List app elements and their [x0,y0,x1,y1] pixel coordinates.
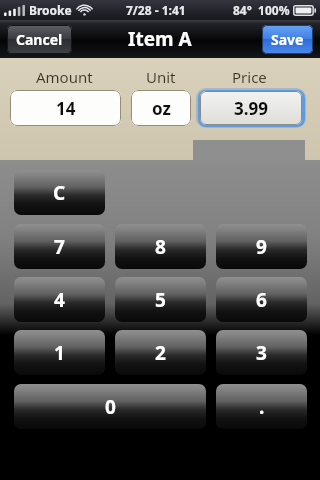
button[interactable]: oz [131,90,191,126]
staticText: Cancel [16,30,63,49]
staticText: Price [232,67,267,87]
staticText: C [53,180,66,206]
button[interactable]: 3 [216,330,307,375]
button[interactable]: 5 [115,277,206,322]
button[interactable]: 4 [14,277,105,322]
button[interactable]: 3.99 [200,91,302,125]
button[interactable]: 6 [216,277,307,322]
button[interactable]: 9 [216,224,307,269]
staticText: 7/28 - 1:41 [126,2,186,18]
staticText: 14 [56,97,76,120]
staticText: 4 [54,287,65,313]
staticText: 5 [155,287,166,313]
button[interactable]: C [14,170,105,215]
staticText: 84° 100% [233,2,290,18]
staticText: Save [271,30,304,49]
button[interactable]: 7 [14,224,105,269]
staticText: Brooke [29,2,72,18]
button[interactable]: Cancel [7,25,72,54]
button[interactable]: . [216,384,307,429]
staticText: 3 [256,340,267,366]
button[interactable]: 1 [14,330,105,375]
staticText: 9 [256,234,267,260]
button[interactable]: 8 [115,224,206,269]
staticText: 0 [105,394,116,420]
button[interactable]: 2 [115,330,206,375]
staticText: 2 [155,340,166,366]
button[interactable]: 14 [10,90,121,126]
staticText: 6 [256,287,267,313]
staticText: 1 [54,340,65,366]
staticText: 7 [54,234,65,260]
staticText: Item A [128,26,192,52]
staticText: . [259,394,265,420]
button[interactable]: 0 [14,384,206,429]
staticText: 8 [155,234,166,260]
button[interactable]: Save [262,25,313,54]
staticText: Unit [146,67,176,87]
staticText: Amount [36,67,93,87]
staticText: oz [152,97,171,120]
staticText: 3.99 [234,97,268,120]
